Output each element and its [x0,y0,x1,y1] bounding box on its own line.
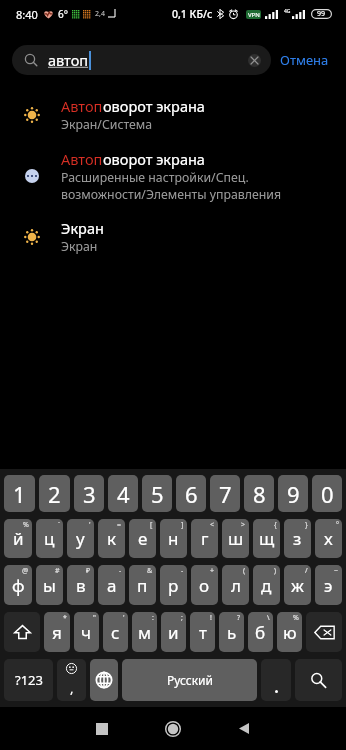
staticText: з [293,527,302,550]
button[interactable]: м [132,612,157,652]
staticText: 6 [185,479,198,509]
button[interactable]: 5 [142,475,172,512]
button[interactable]: Shift [4,612,40,652]
button[interactable]: Русский [122,659,257,701]
staticText: ] [181,520,184,530]
staticText: ц [44,527,55,550]
staticText: 8 [253,479,266,509]
staticText: " [93,613,96,623]
button[interactable]: 6 [176,475,206,512]
staticText: 3 [83,479,96,509]
button[interactable]: ы [36,565,63,605]
button[interactable]: 3 [74,475,104,512]
button[interactable]: с [103,612,128,652]
staticText: + [210,566,215,576]
button[interactable]: т [190,612,215,652]
button[interactable]: 9 [278,475,308,512]
button[interactable]: 8 [244,475,274,512]
staticText: ( [243,566,246,576]
button[interactable]: х [315,519,342,558]
button[interactable]: э [315,565,342,605]
button[interactable]: Отмена [271,45,338,75]
button[interactable]: Backspace [306,612,342,652]
button[interactable]: 4 [108,475,138,512]
staticText: = [117,520,122,530]
staticText: Расширенные настройки/Спец. [61,169,249,186]
staticText: л [231,574,241,597]
button[interactable]: ч [74,612,99,652]
button[interactable]: я [44,612,70,652]
button[interactable]: о [191,565,218,605]
staticText: ° [336,520,339,530]
staticText: : [152,613,154,623]
button[interactable]: Автоп [0,85,346,146]
staticText: ₽ [86,566,91,576]
button[interactable]: ф [4,565,32,605]
button[interactable]: Clear text [248,54,261,67]
staticText: ? [237,613,241,623]
button[interactable]: 0 [312,475,342,512]
staticText: Экран [61,218,104,238]
button[interactable]: р [160,565,187,605]
button[interactable]: Home [137,707,208,750]
button[interactable]: Period [261,659,291,701]
button[interactable]: д [253,565,280,605]
staticText: ; [181,613,183,623]
staticText: # [55,566,60,576]
button[interactable]: 7 [210,475,240,512]
staticText: ж [291,574,304,597]
staticText: х [324,527,333,550]
button[interactable]: ш [222,519,249,558]
button[interactable]: н [160,519,187,558]
button[interactable]: к [98,519,125,558]
staticText: ' [89,520,91,530]
staticText: 4G [284,8,291,15]
staticText: [ [150,520,153,530]
button[interactable]: ?123 [4,659,53,701]
button[interactable]: ц [36,519,63,558]
staticText: Автоп [61,96,103,116]
button[interactable]: й [4,519,32,558]
button[interactable]: Search [295,659,342,701]
staticText: ) [274,566,277,576]
button[interactable]: ж [284,565,311,605]
button[interactable]: у [67,519,94,558]
button[interactable]: автоп [12,45,271,75]
button[interactable]: л [222,565,249,605]
button[interactable]: Автоп [0,146,346,207]
button[interactable]: п [129,565,156,605]
staticText: м [138,621,152,644]
button[interactable]: Recent apps [66,707,137,750]
button[interactable]: г [191,519,218,558]
staticText: 5 [151,479,164,509]
staticText: - [119,566,122,576]
button[interactable]: б [248,612,273,652]
staticText: н [168,527,179,550]
button[interactable]: ю [277,612,302,652]
button[interactable]: Switch language [90,659,118,701]
button[interactable]: е [129,519,156,558]
staticText: и [168,621,179,644]
staticText: я [52,621,62,644]
staticText: 9 [287,479,300,509]
staticText: ` [58,520,60,530]
button[interactable]: 2 [39,475,70,512]
staticText: 2 [48,479,61,509]
staticText: у [76,527,85,550]
button[interactable]: 1 [4,475,35,512]
button[interactable]: в [67,565,94,605]
button[interactable]: з [284,519,311,558]
button[interactable]: ь [219,612,244,652]
staticText: Экран [61,238,98,255]
staticText: 1 [13,479,26,509]
staticText: 7 [219,479,232,509]
staticText: 2,4 [95,9,105,19]
button[interactable]: Back [208,707,279,750]
button[interactable]: щ [253,519,280,558]
button[interactable]: и [161,612,186,652]
button[interactable]: Emoji and comma [57,659,86,701]
staticText: { [274,520,277,530]
button[interactable]: а [98,565,125,605]
button[interactable]: Экран [0,207,346,268]
staticText: / [305,566,308,576]
